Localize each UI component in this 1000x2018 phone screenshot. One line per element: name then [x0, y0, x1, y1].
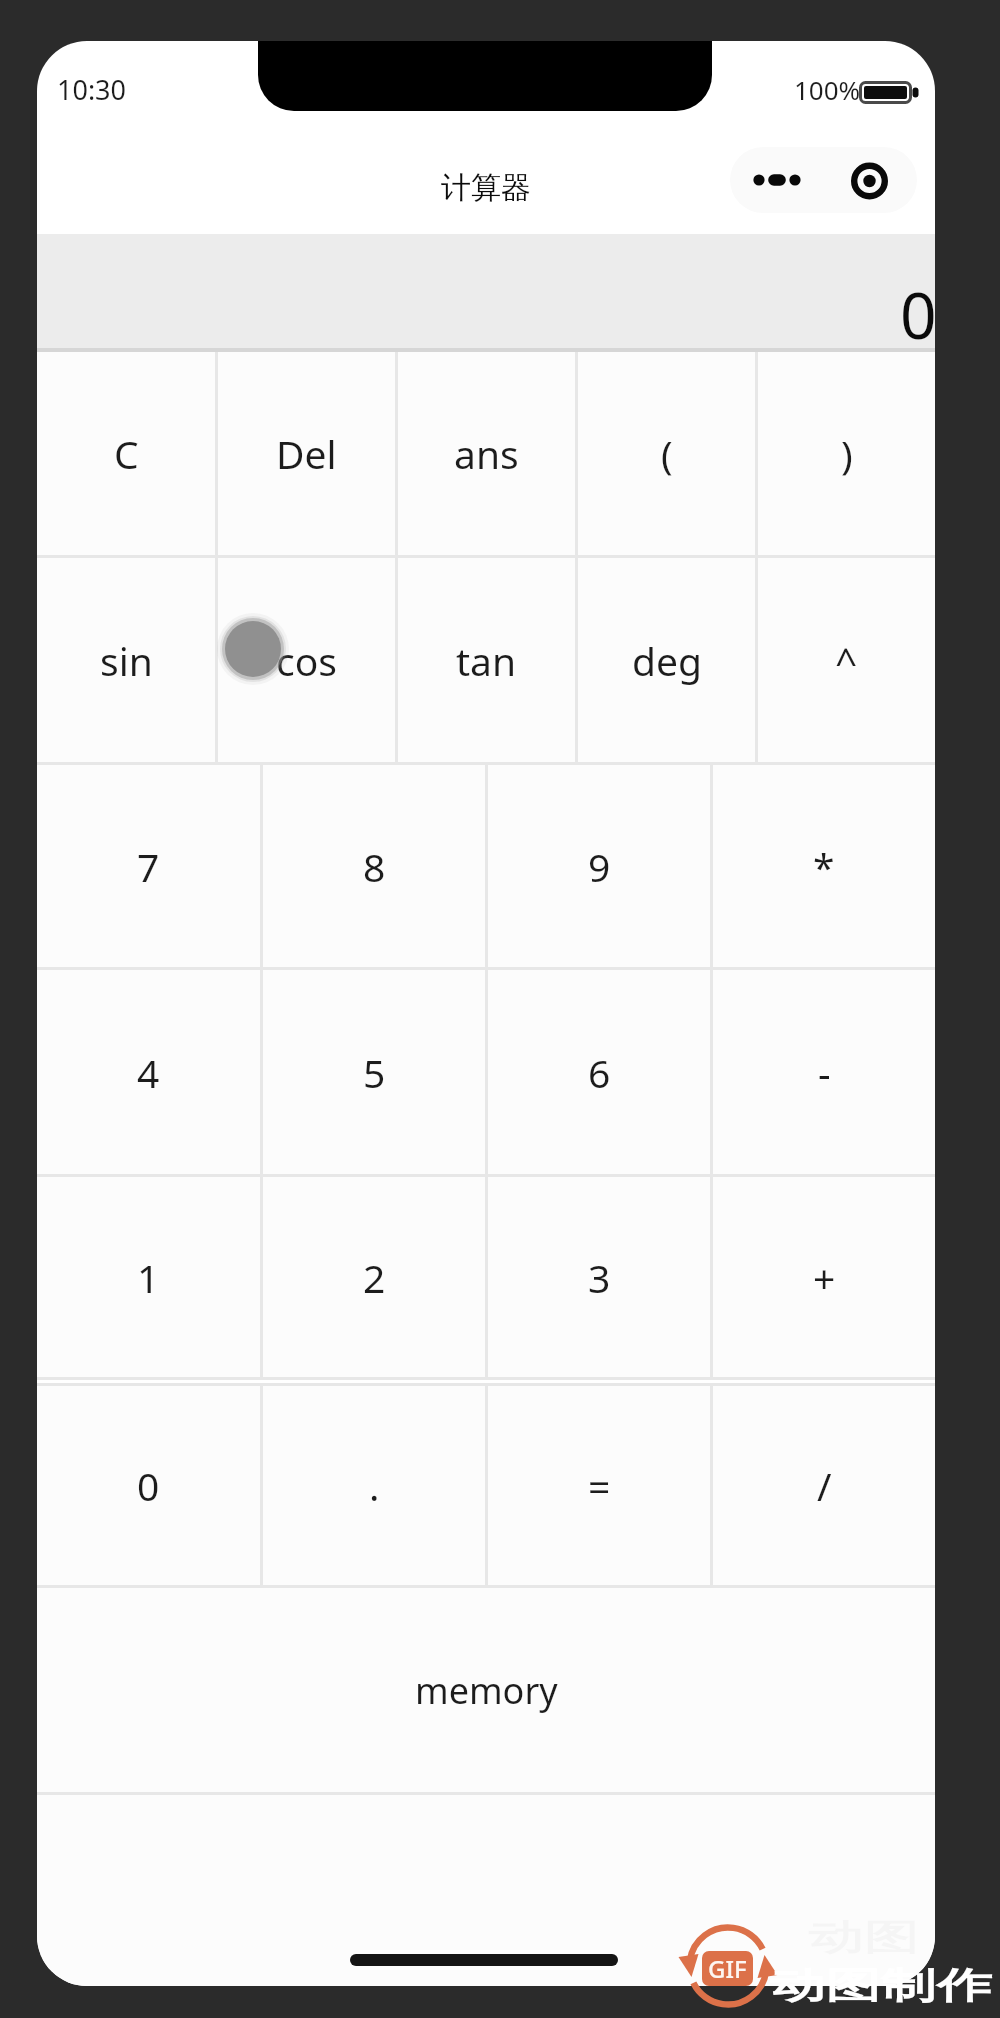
staticText: deg	[632, 634, 702, 687]
button[interactable]: 4	[37, 970, 260, 1174]
staticText: 0	[900, 271, 935, 358]
button[interactable]: +	[713, 1177, 935, 1377]
button[interactable]: -	[713, 970, 935, 1174]
staticText: GIF	[708, 1952, 747, 1985]
button[interactable]: /	[713, 1386, 935, 1585]
button[interactable]: =	[488, 1386, 710, 1585]
staticText: sin	[100, 634, 153, 687]
staticText: 8	[363, 840, 386, 893]
button[interactable]: 6	[488, 970, 710, 1174]
button[interactable]: 7	[37, 765, 260, 967]
button[interactable]: )	[758, 352, 935, 555]
button[interactable]: More options and close mini program	[730, 147, 917, 213]
staticText: 9	[588, 840, 611, 893]
button[interactable]: ^	[758, 558, 935, 762]
button[interactable]: 2	[263, 1177, 485, 1377]
button[interactable]: memory	[37, 1588, 935, 1792]
button[interactable]: ans	[398, 352, 575, 555]
button[interactable]: 8	[263, 765, 485, 967]
staticText: 3	[588, 1251, 611, 1304]
staticText: 6	[588, 1046, 611, 1099]
staticText: 0	[137, 1459, 160, 1512]
staticText: ans	[454, 427, 519, 480]
staticText: memory	[415, 1666, 558, 1715]
button[interactable]: 0	[37, 1386, 260, 1585]
staticText: 7	[137, 840, 160, 893]
button[interactable]: 5	[263, 970, 485, 1174]
staticText: (	[661, 427, 673, 480]
button[interactable]: deg	[578, 558, 755, 762]
staticText: 动图制作	[770, 1963, 992, 2009]
staticText: 计算器	[441, 169, 531, 207]
button[interactable]: cos	[218, 558, 395, 762]
staticText: 4	[137, 1046, 160, 1099]
staticText: .	[369, 1459, 380, 1512]
button[interactable]: 9	[488, 765, 710, 967]
staticText: tan	[456, 634, 517, 687]
button[interactable]: .	[263, 1386, 485, 1585]
button[interactable]: (	[578, 352, 755, 555]
staticText: =	[588, 1459, 611, 1512]
button[interactable]: 3	[488, 1177, 710, 1377]
button[interactable]: C	[37, 352, 215, 555]
staticText: )	[841, 427, 853, 480]
button[interactable]: tan	[398, 558, 575, 762]
staticText: *	[813, 840, 835, 893]
staticText: Del	[276, 427, 337, 480]
button[interactable]: Del	[218, 352, 395, 555]
button[interactable]: 1	[37, 1177, 260, 1377]
button[interactable]: sin	[37, 558, 215, 762]
staticText: -	[818, 1046, 831, 1099]
staticText: ^	[835, 634, 858, 687]
button[interactable]: *	[713, 765, 935, 967]
staticText: 2	[363, 1251, 386, 1304]
staticText: 10:30	[57, 71, 127, 108]
staticText: 动图	[808, 1915, 919, 1961]
other: Battery full	[859, 81, 919, 104]
staticText: 100%	[794, 72, 861, 107]
staticText: +	[813, 1251, 836, 1304]
staticText: 5	[363, 1046, 386, 1099]
staticText: cos	[276, 634, 337, 687]
staticText: 1	[137, 1251, 160, 1304]
staticText: C	[114, 427, 139, 480]
staticText: /	[817, 1459, 832, 1512]
